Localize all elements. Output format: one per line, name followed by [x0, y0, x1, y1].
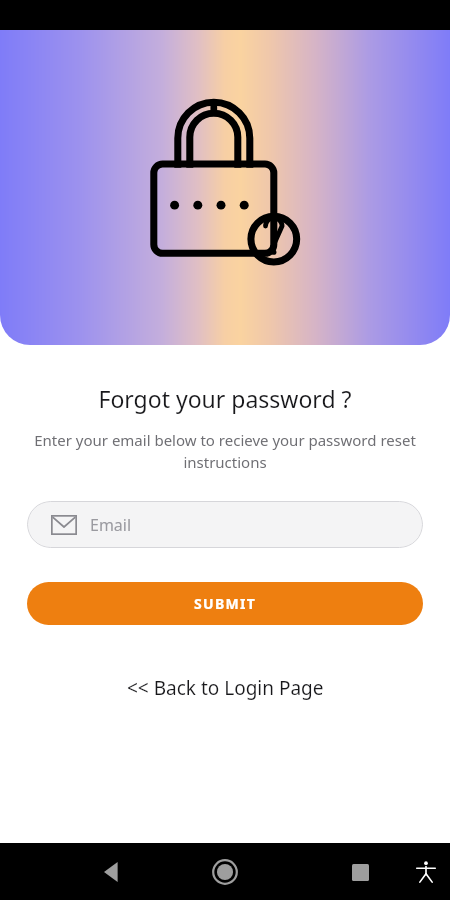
button[interactable]: Home — [203, 850, 247, 894]
staticText: Forgot your password ? — [98, 383, 352, 414]
staticText: Email — [90, 514, 132, 536]
staticText: Enter your email below to recieve your p… — [25, 430, 425, 473]
button[interactable]: SUBMIT — [27, 582, 423, 625]
staticText: << Back to Login Page — [127, 675, 324, 701]
button[interactable]: << Back to Login Page — [113, 668, 338, 708]
button[interactable]: Accessibility — [408, 854, 444, 890]
staticText: SUBMIT — [194, 594, 257, 613]
button[interactable]: Back — [90, 850, 134, 894]
button[interactable]: Email — [27, 501, 423, 548]
button[interactable]: Recent apps — [338, 850, 382, 894]
